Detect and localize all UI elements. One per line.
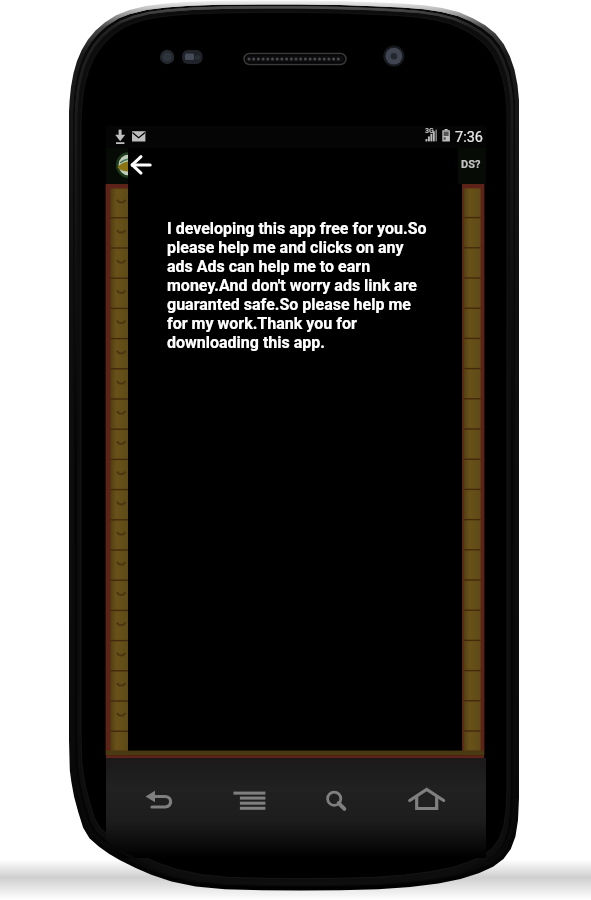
staticText: 3G xyxy=(425,127,434,135)
button[interactable]: Back xyxy=(122,778,198,822)
button[interactable]: Menu xyxy=(211,778,287,822)
staticText: DS? xyxy=(461,158,481,171)
button[interactable]: Back xyxy=(128,148,170,184)
staticText: I developing this app free for you.So pl… xyxy=(167,219,430,352)
button[interactable]: Search xyxy=(296,778,372,822)
staticText: 7:36 xyxy=(455,129,483,146)
button[interactable]: Home xyxy=(388,778,464,822)
